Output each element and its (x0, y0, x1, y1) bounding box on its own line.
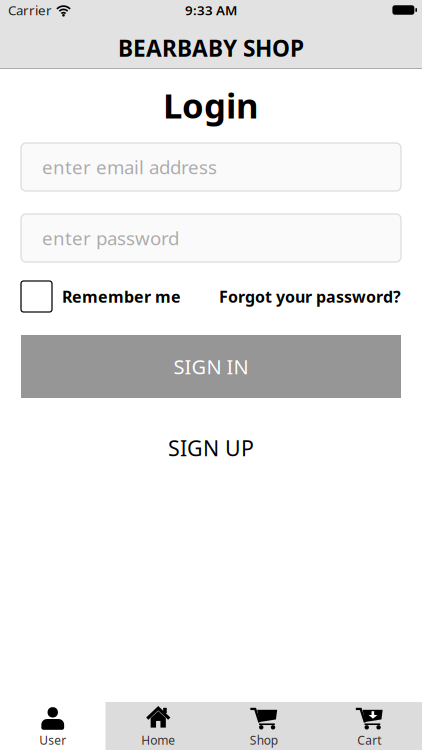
staticText: SIGN IN (173, 353, 248, 380)
staticText: enter password (42, 226, 179, 250)
staticText: enter email address (42, 155, 217, 179)
staticText: Remember me (62, 286, 181, 307)
button[interactable]: SIGN IN (21, 335, 401, 398)
staticText: Shop (250, 732, 278, 748)
staticText: Login (163, 82, 259, 128)
staticText: Cart (357, 732, 381, 748)
button[interactable]: enter email address (21, 143, 401, 191)
staticText: BEARBABY SHOP (118, 33, 304, 63)
staticText: 9:33 AM (185, 1, 237, 19)
button[interactable]: Cart (316, 702, 422, 750)
button[interactable]: Forgot your password? (219, 286, 401, 307)
staticText: SIGN UP (168, 434, 254, 462)
button[interactable]: enter password (21, 214, 401, 262)
staticText: Forgot your password? (219, 286, 401, 307)
button[interactable]: SIGN UP (168, 433, 254, 463)
button[interactable]: User (0, 702, 105, 750)
staticText: Carrier (8, 1, 52, 19)
staticText: Home (141, 732, 175, 748)
button[interactable]: Shop (211, 702, 316, 750)
staticText: User (39, 732, 66, 748)
button[interactable]: Remember me (21, 281, 181, 312)
button[interactable]: Home (105, 702, 211, 750)
